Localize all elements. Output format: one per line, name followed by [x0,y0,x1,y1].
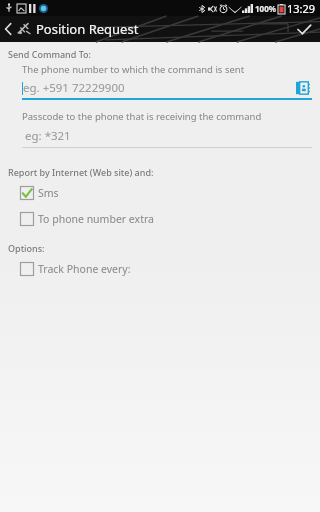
button[interactable]: Sms [0,184,320,202]
staticText: Sms [38,186,59,200]
staticText: To phone number extra [38,212,154,226]
staticText: The phone number to which the command is… [22,63,245,76]
staticText: Passcode to the phone that is receiving … [22,110,262,123]
button[interactable]: Track Phone every: [0,260,320,278]
staticText: Options: [8,242,45,254]
staticText: 100% [255,3,276,14]
button[interactable]: To phone number extra [0,210,320,228]
button[interactable]: eg: *321 [22,128,312,144]
staticText: Position Request [36,20,139,38]
button[interactable]: eg. +591 72229900 [22,80,294,96]
button[interactable]: Pick contact [294,81,312,95]
staticText: Send Command To: [8,48,92,60]
staticText: eg: *321 [25,128,71,144]
button[interactable]: Confirm [288,19,320,40]
staticText: Track Phone every: [38,262,131,276]
staticText: 13:29 [287,1,316,16]
button[interactable]: Back [0,18,143,40]
staticText: eg. +591 72229900 [23,80,125,96]
staticText: Report by Internet (Web site) and: [8,166,154,178]
